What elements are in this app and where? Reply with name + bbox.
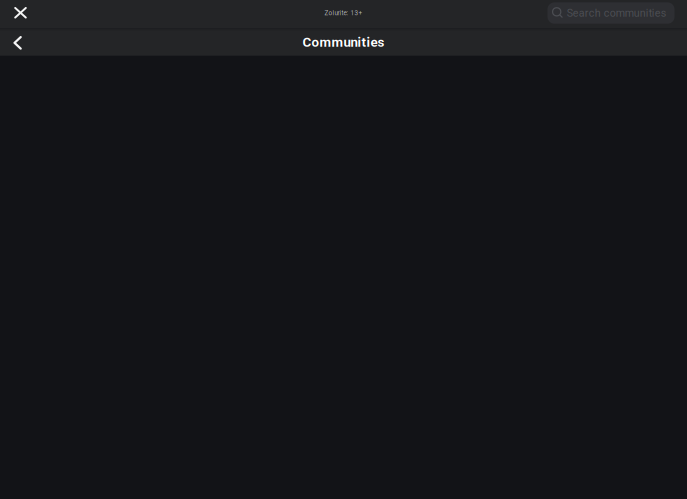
button[interactable]: Close <box>6 0 34 27</box>
staticText: Communities <box>302 34 384 50</box>
staticText: Search communities <box>567 7 667 19</box>
button[interactable]: Back <box>7 30 29 56</box>
staticText: Zolurite: 13+ <box>324 9 362 17</box>
button[interactable]: Search communities <box>547 2 674 24</box>
